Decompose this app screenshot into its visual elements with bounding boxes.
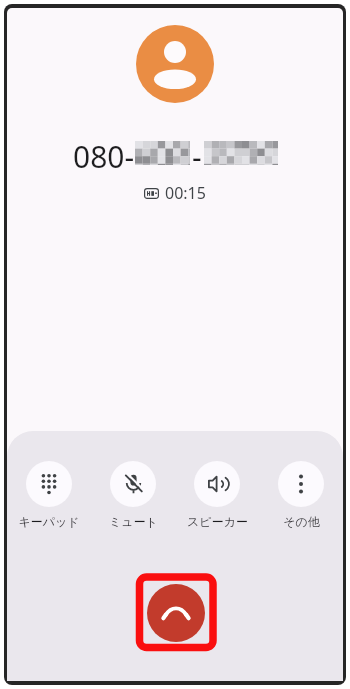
button[interactable]: その他 — [259, 461, 343, 529]
staticText: キーパッド — [18, 514, 80, 529]
staticText: ミュート — [109, 514, 158, 529]
staticText: 080- — [73, 136, 135, 177]
staticText: スピーカー — [187, 514, 248, 529]
button[interactable]: スピーカー — [175, 461, 259, 529]
staticText: - — [192, 136, 202, 177]
button[interactable]: キーパッド — [7, 461, 91, 529]
staticText: 00:15 — [165, 182, 206, 204]
staticText: その他 — [283, 514, 320, 529]
button[interactable] — [147, 584, 205, 642]
button[interactable]: ミュート — [91, 461, 175, 529]
